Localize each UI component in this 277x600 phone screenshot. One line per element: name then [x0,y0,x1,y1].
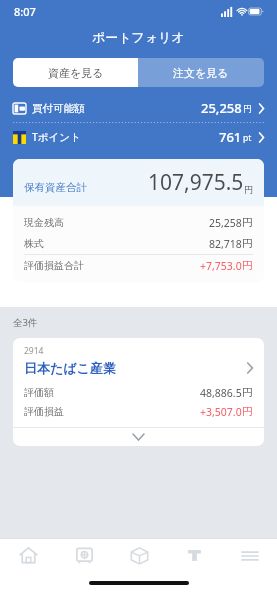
button[interactable]: Expand [13,428,264,446]
staticText: 評価損益合計 [24,259,84,272]
button[interactable]: Menu [222,539,277,572]
staticText: 8:07 [14,4,36,19]
staticText: 株式 [24,237,44,250]
staticText: 評価額 [24,386,54,399]
button[interactable]: Box [112,539,167,572]
staticText: 25,258 [209,216,242,230]
staticText: 82,718 [209,237,242,251]
button[interactable]: T Point [167,539,222,572]
staticText: 円 [242,237,253,250]
staticText: pt [243,132,252,144]
staticText: Tポイント [32,130,81,144]
button[interactable]: 注文を見る [138,58,264,87]
button[interactable]: 買付可能額 [0,94,277,122]
staticText: 注文を見る [173,66,229,80]
staticText: 107,975.5 [148,168,244,197]
button[interactable]: Savings [56,539,112,572]
staticText: 円 [242,405,253,418]
staticText: 761 [219,128,242,146]
staticText: 円 [244,184,253,195]
staticText: 日本たばこ産業 [24,360,116,376]
staticText: +3,507.0 [200,405,242,419]
staticText: 資産を見る [48,66,104,80]
staticText: 48,886.5 [200,386,242,400]
staticText: 円 [242,216,253,229]
staticText: +7,753.0 [200,259,242,273]
button[interactable]: 2914 [13,338,264,427]
staticText: 全3件 [13,316,38,329]
button[interactable]: Home [0,539,56,572]
staticText: 買付可能額 [32,102,85,115]
staticText: 円 [243,104,252,115]
staticText: 評価損益 [24,405,64,418]
staticText: 円 [242,259,253,272]
staticText: 保有資産合計 [24,181,87,194]
staticText: 25,258 [201,99,242,117]
staticText: 2914 [24,345,44,357]
staticText: ポートフォリオ [92,29,185,45]
button[interactable]: 資産を見る [13,58,138,87]
button[interactable]: Tポイント [0,123,277,151]
staticText: 円 [242,386,253,399]
staticText: 現金残高 [24,216,64,229]
